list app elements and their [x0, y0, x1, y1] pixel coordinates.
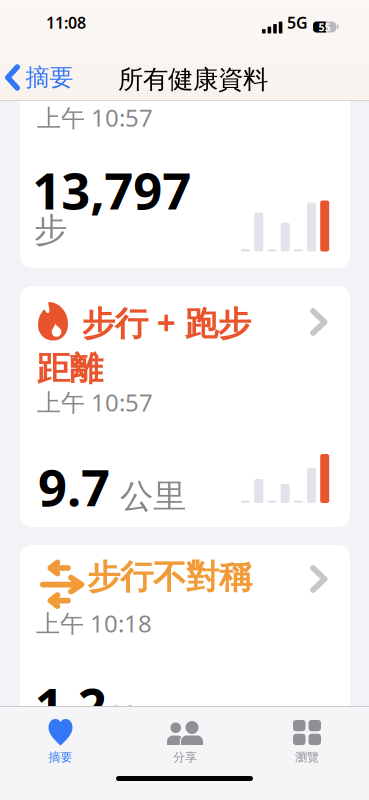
- button[interactable]: 分享: [160, 721, 210, 765]
- staticText: 13,797: [32, 156, 191, 224]
- staticText: 摘要: [25, 63, 73, 92]
- button[interactable]: 步行不對稱: [20, 545, 350, 760]
- staticText: 9.7: [38, 453, 110, 520]
- button[interactable]: 步行 + 跑步: [20, 286, 350, 527]
- staticText: 11:08: [46, 12, 86, 33]
- button[interactable]: 瀏覽: [283, 720, 331, 765]
- staticText: 所有健康資料: [118, 64, 268, 95]
- staticText: 步行 + 跑步: [82, 300, 251, 345]
- staticText: 上午 10:18: [36, 607, 152, 639]
- staticText: 1.2: [35, 672, 107, 739]
- button[interactable]: 摘要: [37, 719, 84, 765]
- staticText: 上午 10:57: [37, 386, 153, 418]
- staticText: 公里: [120, 476, 186, 517]
- button[interactable]: 上午 10:57: [20, 78, 350, 268]
- staticText: 分享: [173, 750, 197, 765]
- staticText: %: [109, 695, 138, 740]
- staticText: 摘要: [48, 750, 72, 765]
- staticText: 5G: [287, 12, 308, 33]
- button[interactable]: 摘要: [0, 54, 73, 101]
- staticText: 上午 10:57: [37, 101, 153, 133]
- staticText: 步: [34, 210, 67, 251]
- staticText: 距離: [37, 348, 103, 389]
- staticText: 55: [318, 20, 330, 34]
- staticText: 步行不對稱: [87, 557, 252, 598]
- staticText: 瀏覽: [295, 750, 319, 765]
